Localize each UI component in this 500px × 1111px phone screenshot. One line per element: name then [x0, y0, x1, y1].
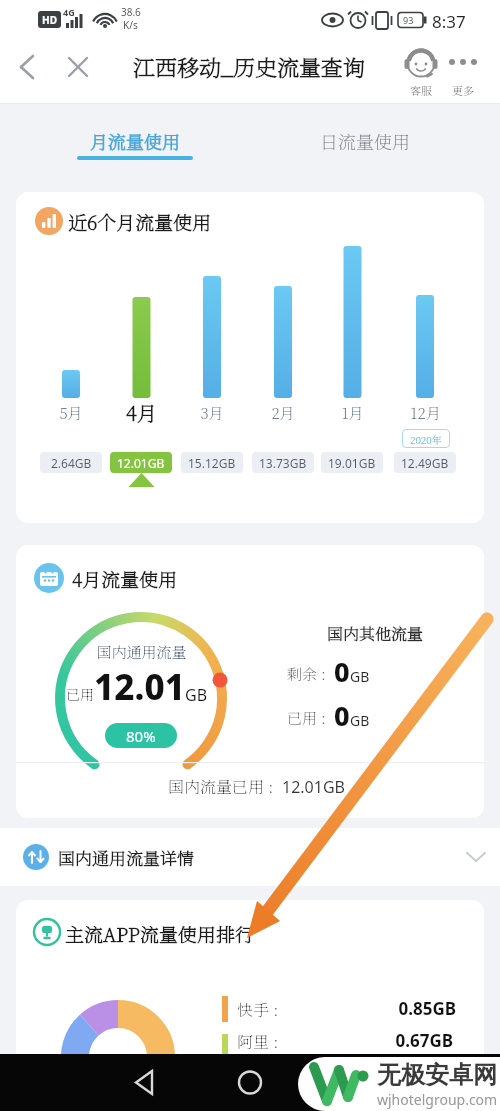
- staticText: 日流量使用: [320, 128, 410, 154]
- staticText: 12.01GB: [117, 455, 165, 471]
- staticText: 1月: [341, 402, 364, 424]
- staticText: 更多: [452, 82, 474, 98]
- button[interactable]: [399, 46, 443, 98]
- staticText: 已用 :: [287, 707, 326, 729]
- staticText: 江西移动_历史流量查询: [133, 51, 366, 83]
- staticText: 8:37: [432, 10, 466, 33]
- staticText: 2020年: [410, 432, 442, 446]
- button[interactable]: 2.64GB: [40, 452, 102, 473]
- staticText: 0.85GB: [398, 997, 456, 1020]
- staticText: 4G: [63, 6, 75, 18]
- staticText: 国内通用流量: [96, 641, 187, 663]
- staticText: 12月: [410, 402, 441, 424]
- staticText: 2.64GB: [51, 455, 92, 471]
- button[interactable]: [60, 48, 96, 86]
- staticText: 客服: [410, 82, 432, 98]
- staticText: 93: [403, 14, 414, 26]
- button[interactable]: [10, 48, 46, 86]
- staticText: 国内通用流量详情: [58, 845, 194, 869]
- button[interactable]: [225, 1060, 275, 1106]
- staticText: GB: [350, 667, 370, 686]
- staticText: 12.01: [94, 663, 185, 711]
- staticText: 快手 :: [237, 998, 279, 1021]
- button[interactable]: 国内通用流量详情: [0, 828, 500, 886]
- staticText: 15.12GB: [188, 455, 236, 471]
- staticText: K/s: [123, 18, 138, 32]
- staticText: 0: [334, 697, 350, 734]
- button[interactable]: 12.49GB: [394, 452, 456, 473]
- staticText: 0: [334, 653, 350, 690]
- staticText: wjhotelgroup.com: [377, 1090, 498, 1109]
- staticText: GB: [350, 711, 370, 730]
- staticText: GB: [185, 684, 208, 706]
- staticText: 国内其他流量: [327, 622, 424, 645]
- staticText: 4月流量使用: [72, 565, 178, 592]
- staticText: 无极安卓网: [377, 1060, 497, 1090]
- staticText: 2月: [271, 402, 295, 424]
- button[interactable]: 15.12GB: [181, 452, 243, 473]
- staticText: 主流APP流量使用排行: [65, 920, 254, 947]
- staticText: 12.01GB: [282, 776, 345, 798]
- staticText: 5月: [59, 402, 83, 424]
- staticText: 月流量使用: [90, 128, 180, 154]
- staticText: 国内流量已用 :: [168, 775, 274, 798]
- staticText: 12.49GB: [401, 455, 449, 471]
- staticText: 已用: [66, 684, 94, 704]
- staticText: 38.6: [121, 5, 141, 19]
- button[interactable]: [444, 46, 486, 98]
- button[interactable]: 月流量使用: [60, 110, 210, 170]
- staticText: 80%: [126, 726, 156, 746]
- button[interactable]: 19.01GB: [321, 452, 383, 473]
- button[interactable]: 13.73GB: [252, 452, 314, 473]
- staticText: 0.67GB: [395, 1029, 453, 1052]
- staticText: 13.73GB: [259, 455, 307, 471]
- staticText: 阿里 :: [237, 1030, 279, 1053]
- staticText: 剩余 :: [287, 663, 326, 685]
- button[interactable]: 12.01GB: [110, 452, 172, 473]
- staticText: 3月: [200, 402, 224, 424]
- button[interactable]: 日流量使用: [290, 110, 440, 170]
- staticText: 19.01GB: [328, 455, 376, 471]
- staticText: HD: [42, 13, 57, 27]
- staticText: 近6个月流量使用: [68, 208, 212, 235]
- staticText: 4月: [126, 398, 157, 427]
- button[interactable]: [120, 1060, 170, 1106]
